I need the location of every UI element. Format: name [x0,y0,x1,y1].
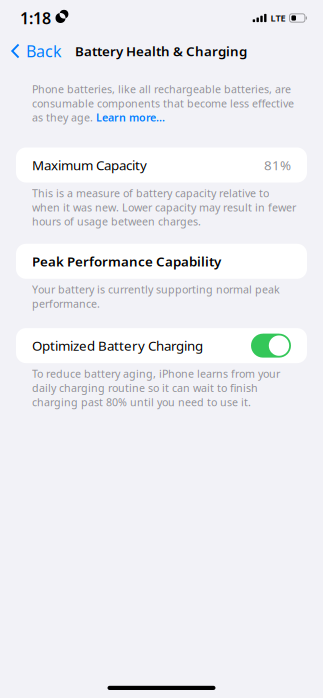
staticText: Back [26,40,62,62]
staticText: 1:18 [20,7,51,29]
staticText: This is a measure of battery capacity re… [32,186,296,228]
staticText: Your battery is currently supporting nor… [32,282,280,311]
staticText: 81% [264,156,291,174]
button[interactable]: Back [0,37,70,65]
staticText: Battery Health & Charging [75,42,247,60]
button[interactable]: Optimized Battery Charging [251,334,291,358]
button[interactable]: Peak Performance Capability [0,228,307,279]
staticText: Optimized Battery Charging [32,337,203,354]
button[interactable]: Maximum Capacity [0,124,307,182]
staticText: Phone batteries, like all rechargeable b… [32,82,294,124]
staticText: Maximum Capacity [32,156,147,174]
staticText: LTE [270,12,285,24]
staticText: Peak Performance Capability [32,252,221,270]
staticText: To reduce battery aging, iPhone learns f… [32,367,280,409]
